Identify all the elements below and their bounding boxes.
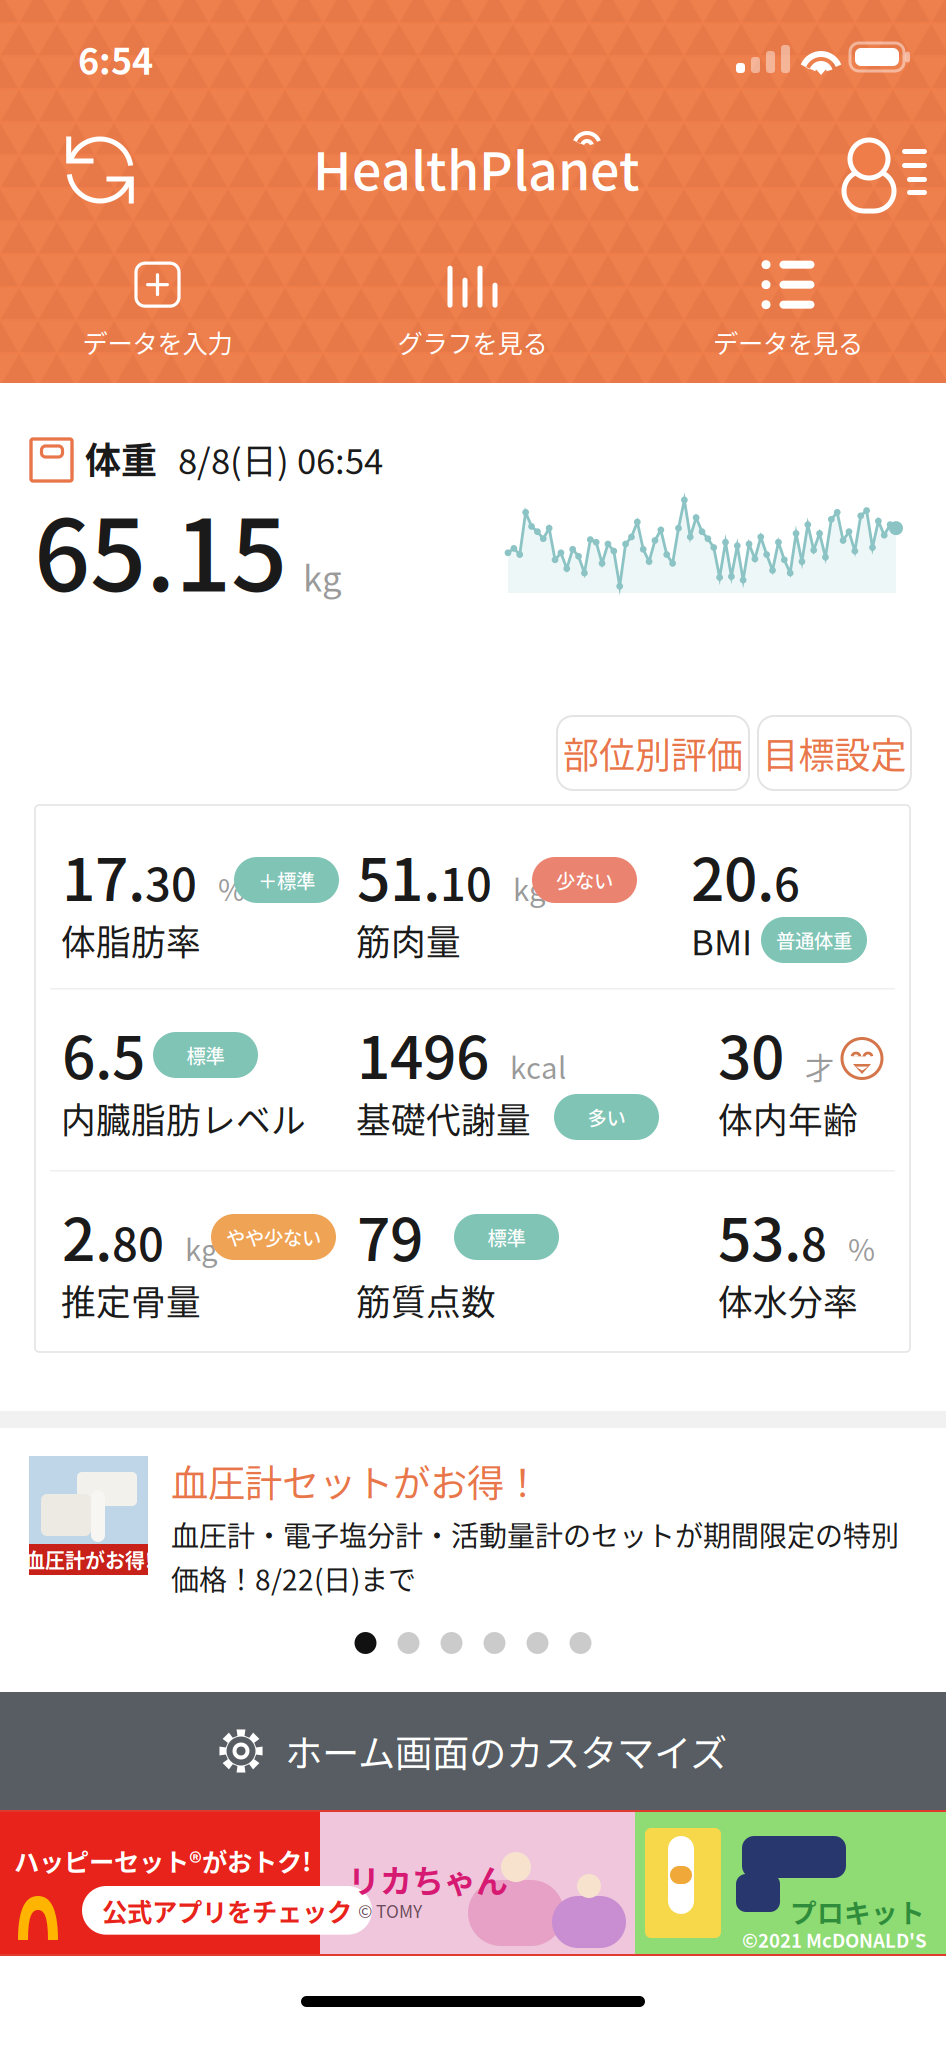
staticText: 6 — [774, 848, 800, 914]
staticText: % — [197, 867, 245, 909]
staticText: リカちゃん — [348, 1856, 508, 1902]
staticText: グラフを見る — [397, 324, 547, 360]
staticText: 標準 — [186, 1041, 224, 1069]
staticText: 筋肉量 — [356, 915, 461, 965]
staticText: BMI — [691, 915, 752, 965]
staticText: ハッピーセット®がおトク! — [14, 1842, 311, 1879]
staticText: 10 — [440, 848, 492, 914]
staticText: ホーム画面のカスタマイズ — [285, 1724, 727, 1778]
staticText: 体重 — [85, 432, 157, 484]
staticText: 79 — [357, 1193, 423, 1278]
staticText: % — [827, 1227, 875, 1269]
button[interactable]: プロフィール — [812, 108, 936, 212]
staticText: 51. — [357, 833, 440, 918]
staticText: 価格！8/22(日)まで — [171, 1558, 416, 1598]
staticText: 筋質点数 — [356, 1275, 496, 1325]
staticText: 体脂肪率 — [61, 915, 201, 965]
staticText: 6.5 — [62, 1011, 145, 1096]
staticText: kcal — [489, 1045, 566, 1087]
staticText: 1496 — [357, 1011, 489, 1096]
staticText: 基礎代謝量 — [356, 1093, 531, 1143]
staticText: 才 — [784, 1045, 834, 1087]
staticText: 血圧計セットがお得！ — [171, 1454, 541, 1508]
staticText: データを入力 — [82, 324, 232, 360]
staticText: 65.15 — [34, 477, 287, 620]
button[interactable]: 広告 — [0, 1810, 946, 1956]
staticText: 多い — [587, 1103, 625, 1131]
staticText: kg — [492, 867, 546, 909]
staticText: やや少ない — [226, 1223, 321, 1251]
staticText: 血圧計がお得! — [25, 1545, 152, 1574]
button[interactable]: ホーム画面のカスタマイズ — [0, 1692, 946, 1810]
staticText: 公式アプリをチェック — [102, 1892, 352, 1929]
button[interactable]: 目標設定 — [758, 716, 911, 790]
button[interactable]: データを見る — [630, 255, 946, 367]
staticText: 血圧計・電子塩分計・活動量計のセットが期間限定の特別 — [171, 1514, 899, 1554]
staticText: kg — [287, 551, 342, 601]
staticText: プロキット — [790, 1892, 925, 1931]
button[interactable]: 血圧計がお得! — [0, 1439, 946, 1611]
staticText: © TOMY — [358, 1898, 422, 1923]
staticText: 17. — [62, 833, 145, 918]
staticText: 部位別評価 — [563, 727, 743, 779]
staticText: 標準 — [487, 1223, 525, 1251]
staticText: 80 — [112, 1208, 164, 1274]
staticText: 体水分率 — [718, 1275, 858, 1325]
button[interactable]: データを入力 — [0, 255, 315, 367]
staticText: 推定骨量 — [61, 1275, 201, 1325]
staticText: HealthPlanet — [313, 130, 640, 205]
staticText: kg — [164, 1227, 218, 1269]
staticText: ＋標準 — [258, 866, 315, 894]
staticText: 2. — [62, 1193, 112, 1278]
staticText: 30 — [145, 848, 197, 914]
button[interactable]: 同期 — [12, 108, 136, 212]
staticText: 30 — [718, 1011, 784, 1096]
staticText: データを見る — [713, 324, 863, 360]
staticText: 体内年齢 — [718, 1093, 858, 1143]
staticText: 目標設定 — [762, 727, 906, 779]
staticText: 20. — [691, 833, 774, 918]
staticText: 8 — [801, 1208, 827, 1274]
staticText: 8/8(日) 06:54 — [178, 434, 383, 484]
staticText: 53. — [718, 1193, 801, 1278]
staticText: 少ない — [556, 866, 613, 894]
button[interactable]: 部位別評価 — [557, 716, 749, 790]
staticText: 6:54 — [78, 33, 153, 85]
staticText: 内臓脂肪レベル — [61, 1093, 306, 1143]
staticText: ©2021 McDONALD'S — [742, 1926, 927, 1953]
button[interactable]: グラフを見る — [315, 255, 630, 367]
staticText: 普通体重 — [776, 926, 852, 954]
